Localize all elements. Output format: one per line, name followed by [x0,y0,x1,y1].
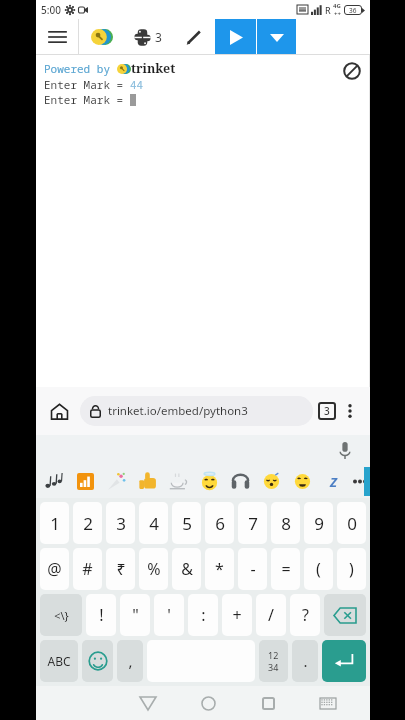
button[interactable]: 7 [238,502,267,544]
staticText: @ [47,558,62,580]
staticText: ₹ [116,558,126,580]
staticText: 6 [215,512,225,535]
button[interactable]: ? [290,594,320,636]
staticText: 5:00 [41,3,61,17]
button[interactable]: Home [178,686,238,720]
button[interactable]: Emoji [82,640,113,682]
staticText: Enter Mark = [44,92,130,107]
button[interactable]: , [117,640,143,682]
button[interactable]: Switch keyboard [298,686,358,720]
button[interactable]: Numbers [259,640,288,682]
staticText: 3 [155,29,162,45]
staticText: 4G [333,2,341,10]
staticText: 8 [281,512,291,535]
button[interactable]: 2 [73,502,102,544]
button[interactable]: Trinket [79,19,125,55]
staticText: Powered by [44,61,117,76]
staticText: R [325,4,331,16]
staticText: ++ [334,10,341,18]
button[interactable] [225,464,256,498]
staticText: ) [349,558,354,580]
staticText: + [232,604,242,626]
button[interactable]: 9 [304,502,333,544]
staticText: : [201,604,206,626]
staticText: 2 [83,512,93,535]
button[interactable]: % [139,548,168,590]
button[interactable]: 1 [40,502,69,544]
button[interactable]: Backspace [324,594,366,636]
button[interactable]: Enter [322,640,366,682]
staticText: 4 [149,512,159,535]
button[interactable]: 3 [106,502,135,544]
button[interactable]: ! [86,594,116,636]
staticText: 9 [314,512,324,535]
button[interactable] [287,464,318,498]
button[interactable]: = [271,548,300,590]
button[interactable]: ) [337,548,366,590]
button[interactable]: & [172,548,201,590]
button[interactable]: * [205,548,234,590]
staticText: 7 [248,512,258,535]
staticText: 44 [130,77,144,92]
button[interactable]: Home [42,394,76,428]
button[interactable]: ' [154,594,184,636]
button[interactable] [256,464,287,498]
button[interactable]: 3 [134,19,162,55]
button[interactable]: ₹ [106,548,135,590]
button[interactable]: " [120,594,150,636]
staticText: % [147,558,161,580]
staticText: 1 [50,512,60,535]
button[interactable]: 8 [271,502,300,544]
button[interactable]: <\} [40,594,82,636]
button[interactable] [39,464,70,498]
staticText: 3 [324,404,330,418]
button[interactable] [194,464,225,498]
button[interactable] [132,464,163,498]
staticText: ' [167,604,171,626]
staticText: 3 [116,512,126,535]
button[interactable]: Menu [36,19,78,55]
staticText: ? [302,604,309,626]
staticText: " [132,604,139,626]
staticText: * [215,558,224,580]
button[interactable]: @ [40,548,69,590]
button[interactable]: : [188,594,218,636]
button[interactable]: More options [257,19,296,55]
staticText: ! [99,604,104,626]
staticText: Enter Mark = [44,77,130,92]
staticText: <\} [54,608,69,623]
button[interactable]: Stop [341,60,363,82]
button[interactable]: / [256,594,286,636]
button[interactable] [163,464,194,498]
button[interactable]: Edit [171,19,215,55]
button[interactable]: trinket.io/embed/python3 [80,396,313,426]
button[interactable]: More emoji [349,464,370,498]
button[interactable]: Run [215,19,256,55]
button[interactable] [101,464,132,498]
button[interactable]: Back [118,686,178,720]
staticText: = [281,558,291,580]
staticText: / [268,604,274,626]
button[interactable]: 4 [139,502,168,544]
button[interactable]: ABC [40,640,78,682]
staticText: Z [330,473,337,491]
button[interactable]: Z [318,464,349,498]
button[interactable]: Tabs [318,402,336,420]
staticText: 36 [349,6,357,15]
staticText: ( [316,558,321,580]
button[interactable]: Voice input [334,439,356,461]
staticText: 34 [268,661,279,673]
button[interactable]: 0 [337,502,366,544]
button[interactable]: # [73,548,102,590]
button[interactable]: 5 [172,502,201,544]
button[interactable]: Recents [238,686,298,720]
button[interactable]: ( [304,548,333,590]
button[interactable]: + [222,594,252,636]
button[interactable] [70,464,101,498]
button[interactable]: 6 [205,502,234,544]
button[interactable]: . [292,640,318,682]
button[interactable]: - [238,548,267,590]
staticText: 0 [347,512,357,535]
button[interactable]: More [336,397,364,425]
